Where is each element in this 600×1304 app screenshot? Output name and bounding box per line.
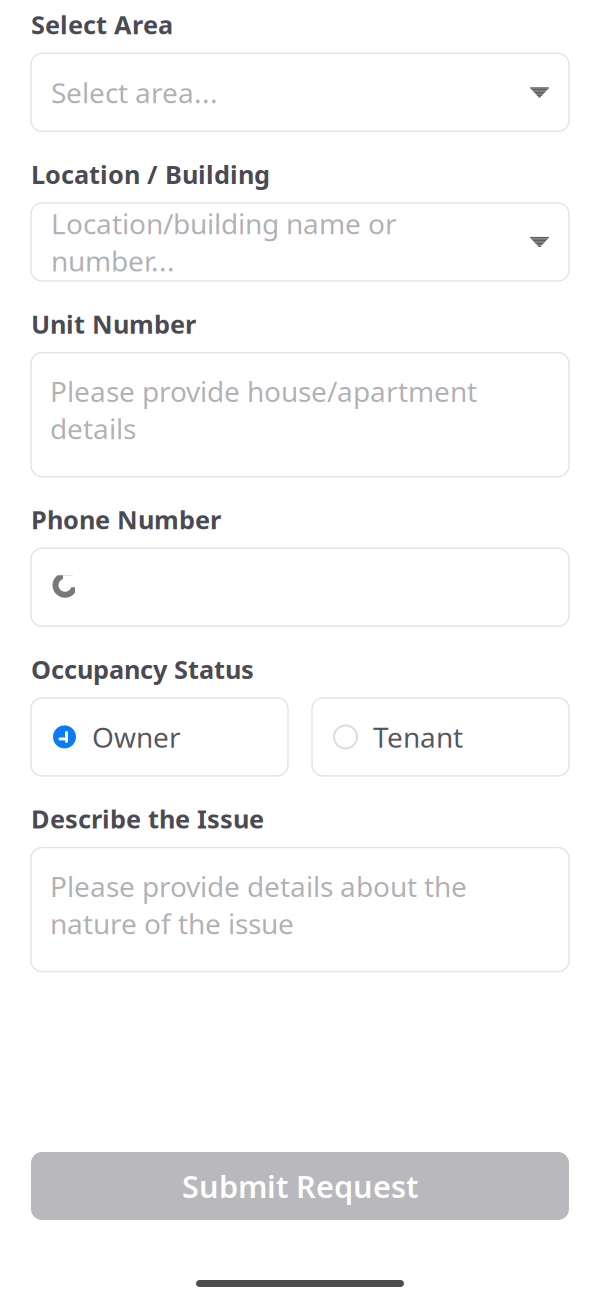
staticText: Submit Request xyxy=(182,1166,418,1206)
staticText: Select Area xyxy=(31,8,173,41)
button[interactable]: Submit Request xyxy=(31,1152,569,1220)
button[interactable]: Owner xyxy=(31,698,288,776)
staticText: Location / Building xyxy=(31,157,270,191)
button[interactable]: Please provide house/apartment details xyxy=(31,353,569,477)
staticText: Unit Number xyxy=(31,307,196,341)
staticText: Owner xyxy=(92,718,181,755)
button[interactable]: Please provide details about the nature … xyxy=(31,847,569,971)
staticText: Select area... xyxy=(51,74,218,111)
staticText: Location/building name or number... xyxy=(51,205,397,279)
staticText: Phone Number xyxy=(31,503,221,536)
button[interactable] xyxy=(31,548,569,626)
staticText: Please provide details about the nature … xyxy=(50,867,467,942)
button[interactable]: Location/building name or number... xyxy=(31,203,569,281)
staticText: Describe the Issue xyxy=(31,802,264,835)
staticText: Occupancy Status xyxy=(31,652,254,686)
button[interactable]: Select area... xyxy=(31,53,569,131)
button[interactable]: Tenant xyxy=(312,698,569,776)
staticText: Please provide house/apartment details xyxy=(50,373,477,447)
staticText: Tenant xyxy=(373,718,463,755)
